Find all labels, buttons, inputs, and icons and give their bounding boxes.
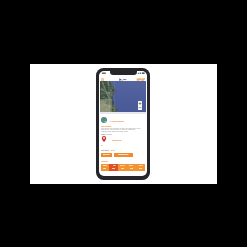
button[interactable]: SAT 10 bbox=[136, 164, 145, 171]
staticText: Lat 41.878100 Lon -87.629800 Accuracy 12… bbox=[101, 128, 141, 130]
staticText: Source: bbox=[101, 134, 106, 136]
staticText: ON bbox=[101, 145, 104, 147]
staticText: SAT 10 bbox=[139, 165, 143, 167]
button[interactable]: TODAY bbox=[101, 164, 109, 171]
button[interactable]: MON 12 bbox=[118, 164, 127, 171]
staticText: TODAY bbox=[103, 165, 107, 167]
staticText: SUN 11 bbox=[129, 165, 134, 167]
button[interactable]: SUN 11 bbox=[127, 164, 136, 171]
staticText: Last Position bbox=[101, 125, 112, 127]
button[interactable]: Disable geofence bbox=[114, 153, 133, 157]
staticText: Alert mode bbox=[103, 154, 110, 156]
staticText: Heading 284 deg Battery 86% Mode: normal bbox=[101, 131, 128, 133]
staticText: Alert mode: bbox=[101, 150, 110, 152]
staticText: on/off bbox=[110, 150, 115, 152]
staticText: 06:45 bbox=[130, 168, 134, 170]
staticText: Timeline bbox=[101, 160, 108, 162]
button[interactable]: YEST bbox=[109, 164, 118, 171]
button[interactable]: Notifications and account bbox=[136, 78, 145, 81]
staticText: 22:10 bbox=[139, 168, 143, 170]
button[interactable]: Alert mode bbox=[101, 153, 112, 157]
staticText: cell tower bbox=[106, 134, 112, 136]
staticText: Disable geofence bbox=[118, 154, 129, 156]
staticText: MON 12 bbox=[120, 165, 125, 167]
staticText: Geofencing bbox=[112, 139, 122, 141]
staticText: 12:04 bbox=[103, 168, 107, 170]
staticText: 19:22 bbox=[121, 168, 125, 170]
staticText: Altitude 181m Time 12:04:22 UTC HDOP 0.9… bbox=[101, 129, 136, 131]
staticText: YEST bbox=[113, 165, 116, 167]
button[interactable]: Zoom map bbox=[138, 101, 142, 110]
staticText: 08:31 bbox=[112, 168, 116, 170]
staticText: 4 Active Satellites bbox=[110, 120, 125, 122]
